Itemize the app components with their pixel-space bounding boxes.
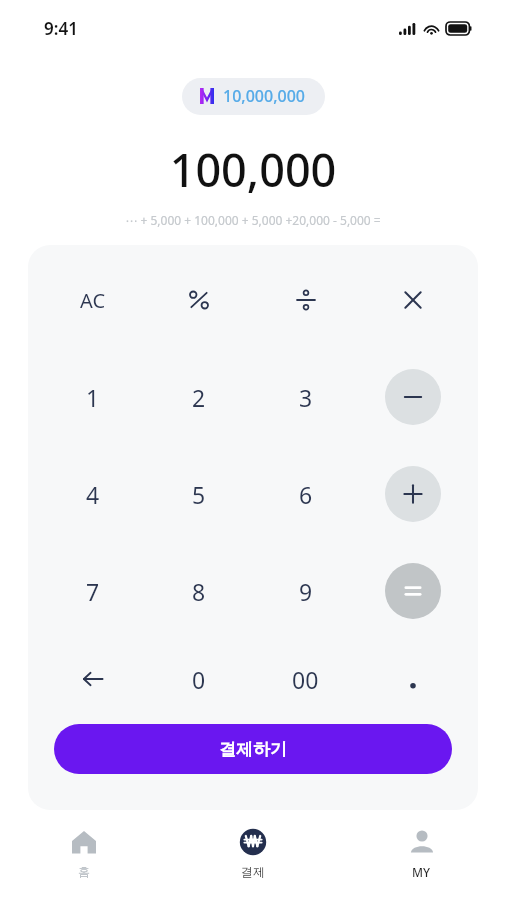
staticText: MY [412,864,431,880]
staticText: 결제하기 [219,739,287,760]
button[interactable]: Backspace [40,656,146,702]
button[interactable]: 결제하기 [54,724,452,774]
button[interactable]: 8 [146,563,252,619]
button[interactable]: My page [337,814,506,900]
staticText: 3 [299,382,313,413]
button[interactable]: 6 [252,466,359,522]
button[interactable]: 1 [40,369,146,425]
staticText: 홈 [78,864,90,879]
staticText: 0 [192,664,206,695]
staticText: 10,000,000 [223,85,305,107]
staticText: 4 [86,479,100,510]
button[interactable]: Payment [168,814,337,900]
button[interactable]: 10,000,000 [182,78,325,115]
staticText: AC [80,287,106,314]
button[interactable]: 0 [146,656,252,702]
button[interactable]: 3 [252,369,359,425]
button[interactable]: Multiply [359,277,466,323]
staticText: 5 [192,479,206,510]
button[interactable]: AC [40,277,146,323]
button[interactable]: 2 [146,369,252,425]
button[interactable]: Minus [385,369,441,425]
button[interactable]: 4 [40,466,146,522]
staticText: ⋯ + 5,000 + 100,000 + 5,000 +20,000 - 5,… [0,212,506,228]
staticText: 2 [192,382,206,413]
staticText: 6 [299,479,313,510]
staticText: 100,000 [0,139,506,200]
button[interactable]: 00 [252,656,359,702]
button[interactable]: 9 [252,563,359,619]
staticText: 결제 [241,864,265,879]
button[interactable]: Equals [385,563,441,619]
staticText: 1 [86,382,100,413]
button[interactable]: Decimal point [359,656,466,702]
staticText: 8 [192,576,206,607]
button[interactable]: Home [0,814,168,900]
staticText: 9 [299,576,313,607]
button[interactable]: Divide [252,277,359,323]
staticText: 7 [86,576,100,607]
staticText: 9:41 [44,17,78,40]
button[interactable]: 7 [40,563,146,619]
button[interactable]: 5 [146,466,252,522]
button[interactable]: Percent [146,277,252,323]
staticText: 00 [292,664,319,695]
button[interactable]: Plus [385,466,441,522]
